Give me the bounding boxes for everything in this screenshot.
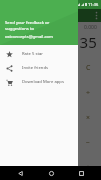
button[interactable]: + <box>76 155 101 180</box>
button[interactable] <box>26 155 51 180</box>
staticText: C <box>86 63 91 73</box>
staticText: − <box>86 138 91 148</box>
button[interactable] <box>26 80 51 105</box>
staticText: ÷ <box>86 88 91 98</box>
button[interactable] <box>0 155 26 180</box>
button[interactable]: Back <box>10 166 30 180</box>
button[interactable] <box>51 80 76 105</box>
staticText: Send your feedback or suggestions to <box>5 20 74 32</box>
button[interactable]: More options <box>91 9 101 22</box>
button[interactable]: Recent apps <box>71 166 91 180</box>
button[interactable]: Invite friends <box>0 61 78 75</box>
staticText: + <box>86 163 91 173</box>
staticText: 11:36 <box>88 2 99 7</box>
staticText: ostconcepts@gmail.com <box>5 34 53 40</box>
staticText: Invite friends <box>22 65 48 71</box>
button[interactable]: Home <box>41 166 61 180</box>
button[interactable] <box>51 155 76 180</box>
button[interactable]: Download More apps <box>0 75 78 89</box>
staticText: × <box>86 113 91 123</box>
staticText: 135 <box>71 32 97 52</box>
button[interactable] <box>0 80 26 105</box>
staticText: Download More apps <box>22 79 64 85</box>
button[interactable]: − <box>76 130 101 155</box>
staticText: Rate 5 star <box>22 51 43 57</box>
button[interactable] <box>0 55 26 80</box>
button[interactable]: C <box>76 55 101 80</box>
button[interactable]: ÷ <box>76 80 101 105</box>
button[interactable]: Rate 5 star <box>0 47 78 61</box>
button[interactable]: × <box>76 105 101 130</box>
staticText: 0.000 <box>84 24 97 31</box>
button[interactable] <box>26 55 51 80</box>
